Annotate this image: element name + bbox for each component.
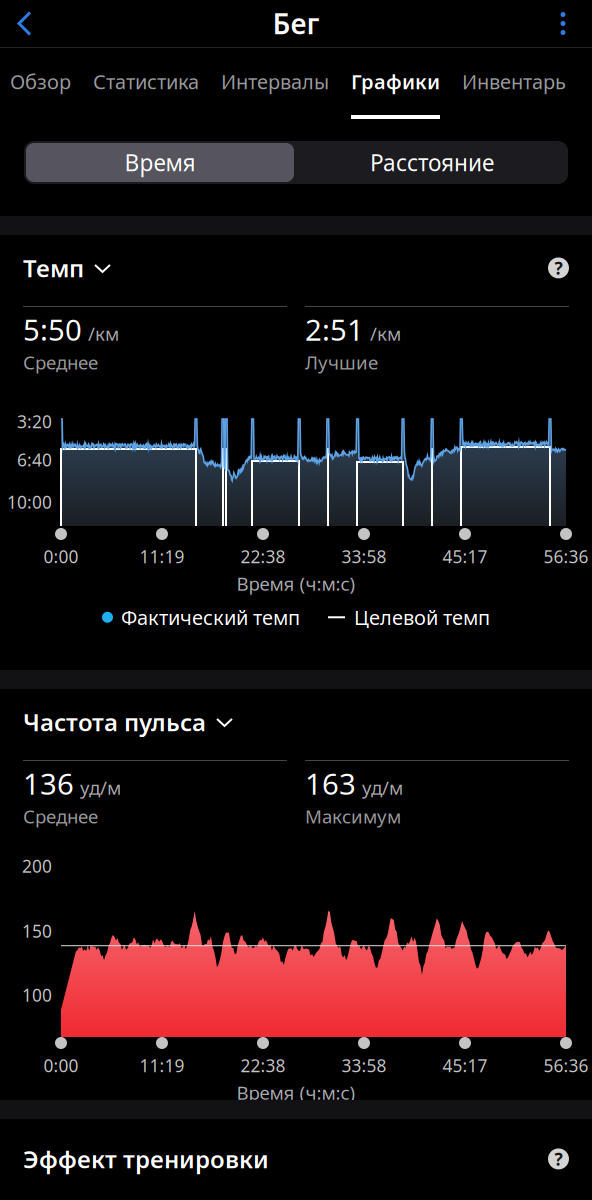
staticText: Эффект тренировки [23, 1143, 269, 1175]
button[interactable]: Инвентарь [462, 48, 566, 119]
staticText: Бег [272, 5, 319, 42]
staticText: 11:19 [139, 1054, 184, 1077]
button[interactable]: Справка [548, 257, 569, 278]
staticText: Графики [351, 68, 440, 95]
staticText: 22:38 [240, 1054, 285, 1077]
staticText: 3:20 [17, 410, 52, 433]
staticText: Интервалы [221, 68, 329, 95]
staticText: 33:58 [341, 1054, 386, 1077]
button[interactable]: Время [24, 141, 296, 184]
staticText: /км [370, 321, 401, 346]
staticText: уд/м [80, 775, 121, 800]
staticText: 200 [22, 855, 52, 878]
staticText: Обзор [10, 68, 71, 95]
button[interactable]: Графики [351, 48, 440, 119]
staticText: Время (ч:м:с) [236, 1080, 355, 1105]
button[interactable]: Статистика [93, 48, 199, 119]
staticText: 45:17 [442, 545, 487, 568]
staticText: 45:17 [442, 1054, 487, 1077]
staticText: 56:36 [543, 545, 588, 568]
staticText: Целевой темп [354, 604, 490, 631]
staticText: 150 [22, 919, 52, 942]
staticText: 0:00 [43, 545, 78, 568]
staticText: 100 [22, 984, 52, 1007]
staticText: Время [124, 147, 195, 177]
staticText: Инвентарь [462, 68, 566, 95]
button[interactable]: Интервалы [221, 48, 329, 119]
button[interactable]: Обзор [10, 48, 71, 119]
staticText: ? [554, 256, 562, 279]
staticText: 2:51 [305, 310, 364, 349]
button[interactable]: Ещё [534, 6, 592, 40]
button[interactable]: Справка [548, 1148, 569, 1169]
button[interactable]: Темп [23, 252, 111, 284]
button[interactable]: Частота пульса [23, 706, 233, 738]
staticText: Статистика [93, 68, 199, 95]
staticText: Фактический темп [121, 604, 300, 631]
staticText: 56:36 [543, 1054, 588, 1077]
staticText: ? [554, 1147, 562, 1170]
staticText: Темп [23, 252, 84, 284]
staticText: уд/м [362, 775, 403, 800]
staticText: Частота пульса [23, 706, 206, 738]
staticText: 11:19 [139, 545, 184, 568]
staticText: Лучшие [305, 350, 378, 375]
staticText: Время (ч:м:с) [236, 571, 355, 596]
staticText: 6:40 [17, 448, 52, 471]
staticText: Максимум [305, 804, 401, 829]
staticText: 33:58 [341, 545, 386, 568]
staticText: Расстояние [370, 147, 494, 177]
button[interactable]: Назад [0, 6, 50, 40]
staticText: 0:00 [43, 1054, 78, 1077]
staticText: 136 [23, 764, 74, 803]
staticText: 5:50 [23, 310, 82, 349]
staticText: 10:00 [7, 490, 52, 513]
staticText: /км [88, 321, 119, 346]
button[interactable]: Расстояние [296, 141, 568, 184]
staticText: 163 [305, 764, 356, 803]
staticText: Среднее [23, 804, 98, 829]
staticText: Среднее [23, 350, 98, 375]
staticText: 22:38 [240, 545, 285, 568]
